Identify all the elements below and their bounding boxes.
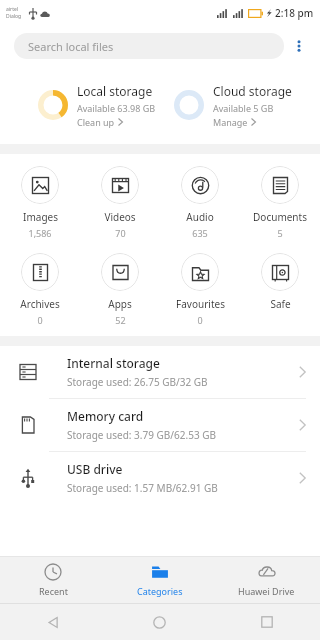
button[interactable]: Favourites [160, 251, 240, 328]
staticText: Dialog [6, 13, 22, 20]
staticText: Storage used: 1.57 MB/62.91 GB [67, 481, 218, 495]
staticText: 0 [37, 314, 43, 326]
button[interactable]: Safe [240, 251, 320, 313]
staticText: airtel [6, 6, 19, 13]
staticText: Available 5 GB [213, 102, 274, 114]
button[interactable]: More options [284, 31, 314, 61]
staticText: Audio [186, 210, 214, 224]
button[interactable]: Videos [80, 164, 160, 241]
staticText: Storage used: 26.75 GB/32 GB [67, 375, 208, 389]
button[interactable]: Memory card [0, 399, 320, 452]
button[interactable]: Home [106, 604, 213, 640]
button[interactable]: USB drive [0, 452, 320, 504]
button[interactable]: Back [0, 604, 106, 640]
staticText: Documents [253, 210, 307, 224]
button[interactable]: Documents [240, 164, 320, 241]
staticText: 5 [277, 227, 283, 239]
staticText: Safe [270, 297, 291, 311]
button[interactable]: Recent apps [213, 604, 320, 640]
button[interactable]: Local storage [0, 66, 160, 144]
button[interactable]: Audio [160, 164, 240, 241]
staticText: Search local files [28, 39, 114, 54]
button[interactable]: Categories [106, 557, 213, 603]
button[interactable]: Images [0, 164, 80, 241]
staticText: Categories [137, 585, 183, 597]
staticText: 52 [115, 314, 126, 326]
button[interactable]: Recent [0, 557, 106, 603]
staticText: 635 [192, 227, 208, 239]
button[interactable]: Internal storage [0, 346, 320, 399]
staticText: Videos [104, 210, 136, 224]
staticText: Available 63.98 GB [77, 102, 156, 114]
staticText: Apps [108, 297, 132, 311]
staticText: Clean up [77, 116, 115, 128]
staticText: Recent [39, 585, 68, 597]
staticText: Memory card [67, 408, 144, 424]
staticText: Internal storage [67, 355, 160, 371]
staticText: Huawei Drive [238, 585, 295, 597]
button[interactable]: Cloud storage [160, 66, 320, 144]
staticText: Storage used: 3.79 GB/62.53 GB [67, 428, 216, 442]
button[interactable]: Huawei Drive [213, 557, 320, 603]
staticText: Local storage [77, 83, 153, 99]
staticText: Images [23, 210, 58, 224]
button[interactable]: Apps [80, 251, 160, 328]
button[interactable]: Archives [0, 251, 80, 328]
staticText: Manage [213, 116, 248, 128]
staticText: 1,586 [28, 227, 52, 239]
staticText: Cloud storage [213, 83, 292, 99]
staticText: USB drive [67, 461, 123, 477]
button[interactable]: Search local files [14, 33, 284, 59]
staticText: 0 [197, 314, 203, 326]
staticText: Favourites [176, 297, 225, 311]
staticText: 2:18 pm [275, 6, 314, 20]
staticText: 70 [115, 227, 126, 239]
staticText: Archives [20, 297, 60, 311]
